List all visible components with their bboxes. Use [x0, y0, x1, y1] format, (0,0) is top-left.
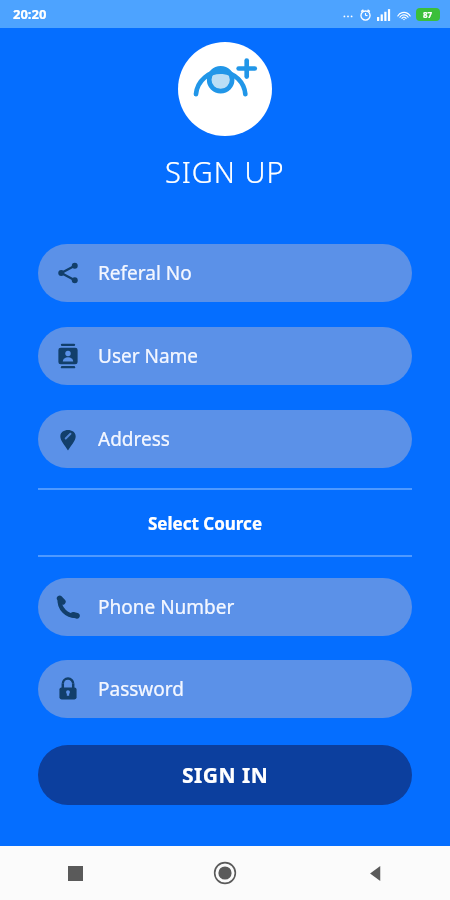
button[interactable]: Phone Number — [38, 578, 412, 636]
staticText: Password — [98, 676, 184, 702]
button[interactable]: Select Cource — [38, 488, 412, 557]
button[interactable]: User Name — [38, 327, 412, 385]
staticText: SIGN IN — [182, 761, 269, 790]
staticText: SIGN UP — [165, 152, 285, 191]
staticText: 20:20 — [13, 5, 47, 23]
button[interactable]: Back — [300, 846, 450, 900]
staticText: Address — [98, 426, 170, 452]
staticText: Select Cource — [38, 512, 372, 535]
button[interactable]: SIGN IN — [38, 745, 412, 805]
staticText: Referal No — [98, 260, 192, 286]
button[interactable]: Password — [38, 660, 412, 718]
staticText: Phone Number — [98, 594, 235, 620]
button[interactable]: Address — [38, 410, 412, 468]
button[interactable]: Home — [150, 846, 300, 900]
button[interactable]: Referal No — [38, 244, 412, 302]
staticText: User Name — [98, 343, 199, 369]
staticText: 87 — [423, 9, 433, 20]
button[interactable]: Recents — [0, 846, 150, 900]
